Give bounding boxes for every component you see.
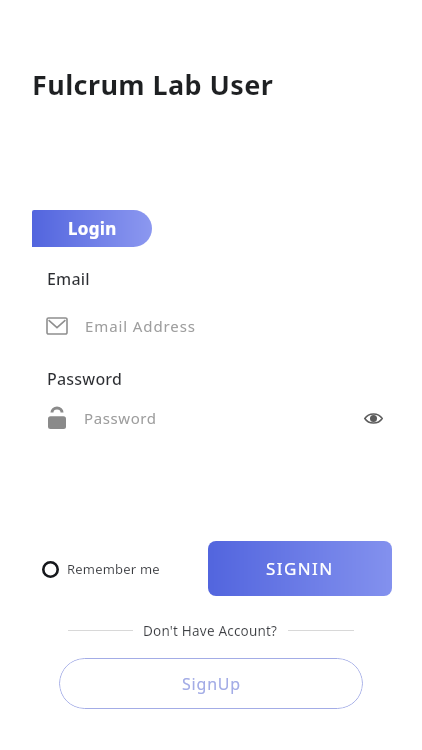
button[interactable]: Remember me (36, 552, 160, 586)
button[interactable]: Login (32, 210, 152, 247)
button[interactable]: SIGNIN (208, 541, 392, 596)
staticText: Password (84, 408, 157, 428)
button[interactable]: Email Address (32, 306, 390, 346)
staticText: Email (47, 268, 90, 290)
button[interactable]: SignUp (59, 658, 363, 709)
staticText: Fulcrum Lab User (32, 66, 274, 103)
staticText: SIGNIN (266, 557, 334, 580)
staticText: Remember me (67, 560, 160, 578)
staticText: SignUp (182, 673, 241, 695)
button[interactable]: Show password (356, 401, 390, 435)
staticText: Don't Have Account? (143, 622, 278, 638)
staticText: Email Address (85, 316, 196, 336)
button[interactable]: Password (32, 398, 390, 438)
staticText: Password (47, 368, 123, 390)
staticText: Login (68, 217, 117, 240)
